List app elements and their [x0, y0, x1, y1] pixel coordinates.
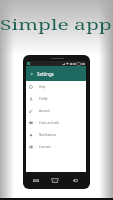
- button[interactable]: Chats and calls: [26, 117, 86, 129]
- button[interactable]: Contacts: [26, 141, 86, 153]
- staticText: Contacts: [39, 145, 51, 149]
- staticText: Notifications: [39, 133, 57, 137]
- button[interactable]: Recent apps: [30, 174, 42, 186]
- staticText: Settings: [37, 71, 54, 77]
- button[interactable]: Notifications: [26, 129, 86, 141]
- button[interactable]: Home: [49, 174, 61, 186]
- button[interactable]: Back: [69, 174, 81, 186]
- staticText: Profile: [39, 97, 48, 101]
- staticText: Chats and calls: [39, 121, 60, 125]
- staticText: Account: [39, 109, 50, 113]
- button[interactable]: Profile: [26, 93, 86, 105]
- button[interactable]: Account: [26, 105, 86, 117]
- staticText: Help: [39, 85, 46, 89]
- button[interactable]: Help: [26, 81, 86, 93]
- staticText: Simple app: [0, 14, 112, 34]
- button[interactable]: Navigate up: [26, 66, 37, 81]
